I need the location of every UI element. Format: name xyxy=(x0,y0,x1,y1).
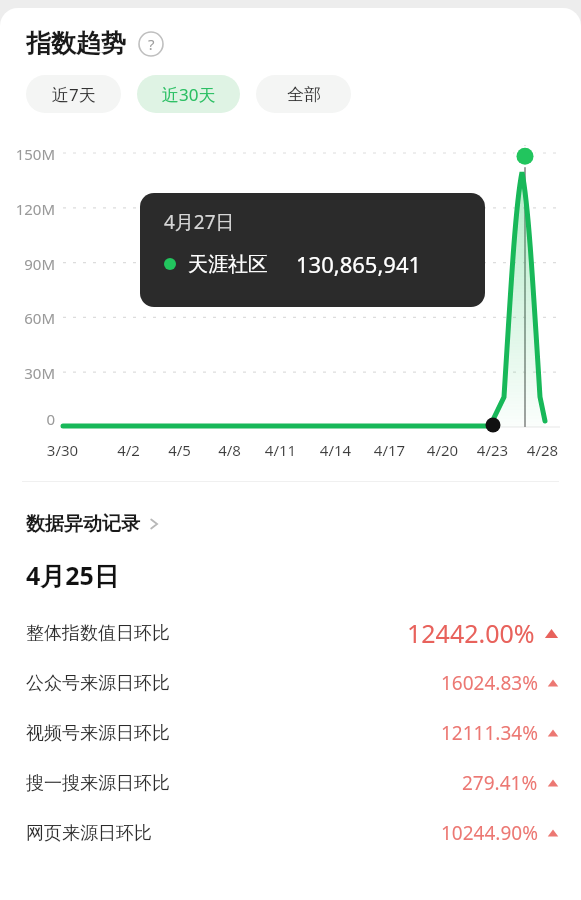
staticText: 视频号来源日环比 xyxy=(26,722,170,745)
staticText: 4/14 xyxy=(313,440,358,460)
button[interactable]: 视频号来源日环比 xyxy=(0,714,581,752)
staticText: 4/28 xyxy=(520,440,565,460)
staticText: 90M xyxy=(0,254,55,274)
button[interactable]: 数据异动记录 xyxy=(26,512,161,536)
staticText: 279.41% xyxy=(462,770,538,796)
staticText: 整体指数值日环比 xyxy=(26,622,170,645)
staticText: 120M xyxy=(0,199,55,219)
staticText: 天涯社区 xyxy=(188,252,268,277)
staticText: ? xyxy=(148,34,155,54)
staticText: 12442.00% xyxy=(407,616,535,650)
staticText: 全部 xyxy=(287,84,321,105)
button[interactable]: 帮助 xyxy=(138,31,164,57)
staticText: 数据异动记录 xyxy=(26,512,140,536)
staticText: 3/30 xyxy=(40,440,85,460)
staticText: 0 xyxy=(0,409,55,429)
staticText: 搜一搜来源日环比 xyxy=(26,772,170,795)
staticText: 4/17 xyxy=(367,440,412,460)
staticText: 公众号来源日环比 xyxy=(26,672,170,695)
button[interactable]: 全部 xyxy=(256,75,351,113)
staticText: 4/20 xyxy=(420,440,465,460)
staticText: 4/11 xyxy=(258,440,303,460)
staticText: 4月27日 xyxy=(164,209,235,235)
staticText: 4/23 xyxy=(470,440,515,460)
staticText: 网页来源日环比 xyxy=(26,822,152,845)
staticText: 16024.83% xyxy=(441,670,538,696)
button[interactable]: 近7天 xyxy=(26,75,121,113)
staticText: 4/5 xyxy=(157,440,202,460)
staticText: 130,865,941 xyxy=(296,249,422,279)
button[interactable]: 整体指数值日环比 xyxy=(0,614,581,652)
button[interactable]: 搜一搜来源日环比 xyxy=(0,764,581,802)
staticText: 近7天 xyxy=(52,83,96,106)
staticText: 12111.34% xyxy=(441,720,538,746)
button[interactable]: 网页来源日环比 xyxy=(0,814,581,852)
staticText: 4/8 xyxy=(207,440,252,460)
staticText: 10244.90% xyxy=(441,820,538,846)
staticText: 指数趋势 xyxy=(26,28,126,59)
button[interactable]: 近30天 xyxy=(137,75,240,113)
staticText: 4月25日 xyxy=(26,558,119,592)
button[interactable]: 公众号来源日环比 xyxy=(0,664,581,702)
staticText: 150M xyxy=(0,144,55,164)
staticText: 4/2 xyxy=(106,440,151,460)
staticText: 近30天 xyxy=(162,83,216,106)
staticText: 30M xyxy=(0,363,55,383)
staticText: 60M xyxy=(0,308,55,328)
